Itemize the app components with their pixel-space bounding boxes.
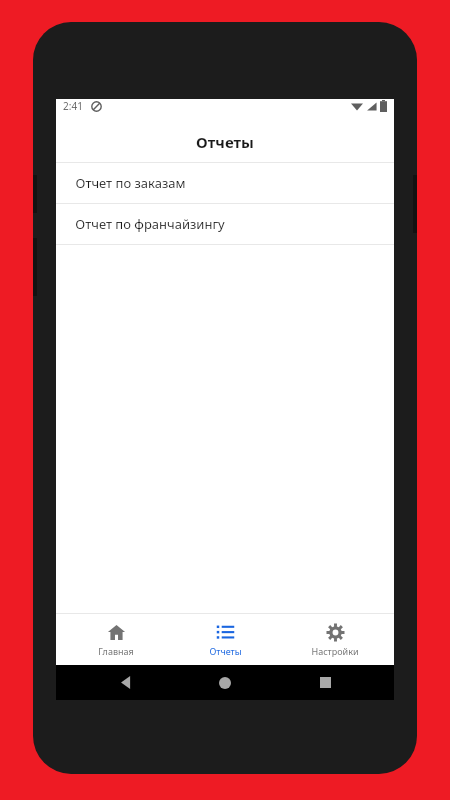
- staticText: Отчет по франчайзингу: [75, 215, 225, 233]
- staticText: Настройки: [311, 645, 359, 657]
- staticText: Главная: [98, 645, 134, 657]
- button[interactable]: Отчеты: [175, 614, 275, 665]
- button[interactable]: Отчет по франчайзингу: [56, 204, 394, 244]
- button[interactable]: Главная: [66, 614, 166, 665]
- button[interactable]: Настройки: [285, 614, 385, 665]
- button[interactable]: Home: [195, 665, 255, 700]
- button[interactable]: Back: [96, 665, 156, 700]
- button[interactable]: Отчет по заказам: [56, 163, 394, 203]
- staticText: Отчет по заказам: [75, 174, 186, 192]
- staticText: 2:41: [63, 99, 83, 113]
- staticText: Отчеты: [209, 645, 242, 657]
- staticText: Отчеты: [196, 132, 254, 152]
- button[interactable]: Recents: [295, 665, 355, 700]
